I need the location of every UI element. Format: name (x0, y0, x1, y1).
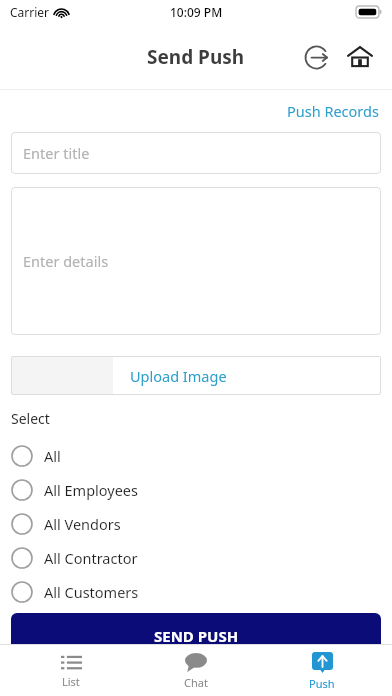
staticText: Send Push (147, 44, 245, 70)
staticText: All Customers (44, 582, 139, 602)
button[interactable]: Push Records (285, 99, 381, 123)
staticText: Upload Image (130, 366, 227, 386)
button[interactable]: All Employees (11, 473, 381, 507)
staticText: 10:09 PM (170, 4, 223, 20)
staticText: SEND PUSH (154, 626, 239, 646)
staticText: Enter title (23, 143, 90, 163)
button[interactable]: Enter details (11, 187, 381, 335)
button[interactable]: Chat (141, 645, 251, 696)
staticText: All (44, 446, 61, 466)
button[interactable]: SEND PUSH (11, 613, 381, 659)
staticText: Enter details (23, 251, 109, 271)
button[interactable]: List (16, 645, 126, 696)
staticText: All Contractor (44, 548, 138, 568)
button[interactable]: All Vendors (11, 507, 381, 541)
button[interactable]: Enter title (11, 132, 381, 174)
staticText: List (62, 674, 80, 689)
button[interactable]: Upload Image (11, 356, 381, 395)
staticText: Push Records (287, 101, 379, 121)
button[interactable]: Logout (294, 35, 338, 79)
staticText: Carrier (10, 4, 50, 20)
staticText: All Vendors (44, 514, 121, 534)
staticText: Push (309, 676, 335, 691)
button[interactable]: All Customers (11, 575, 381, 609)
staticText: Chat (184, 675, 208, 690)
button[interactable]: All (11, 439, 381, 473)
staticText: All Employees (44, 480, 138, 500)
button[interactable]: All Contractor (11, 541, 381, 575)
button[interactable]: Push (267, 645, 377, 696)
staticText: Select (11, 409, 50, 428)
button[interactable]: Home (338, 35, 382, 79)
